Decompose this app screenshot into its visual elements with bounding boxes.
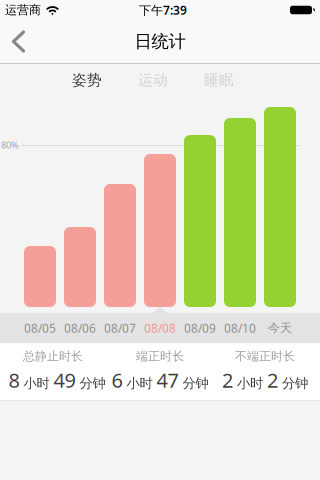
staticText: 小时 xyxy=(237,375,263,391)
staticText: 47 xyxy=(156,367,178,393)
staticText: 运营商 xyxy=(5,3,41,17)
button[interactable]: 今天 xyxy=(260,313,300,343)
staticText: 08/09 xyxy=(184,320,216,336)
staticText: 分钟 xyxy=(182,375,208,391)
button[interactable]: 08/09 xyxy=(180,313,220,343)
staticText: 2 xyxy=(267,367,278,393)
staticText: 小时 xyxy=(23,375,49,391)
button[interactable]: 睡眠 xyxy=(187,64,251,96)
button[interactable]: 08/10 xyxy=(220,313,260,343)
staticText: 小时 xyxy=(126,375,152,391)
button[interactable]: 运动 xyxy=(121,64,185,96)
staticText: 姿势 xyxy=(72,71,102,89)
staticText: 2 xyxy=(222,367,233,393)
staticText: 49 xyxy=(53,367,75,393)
staticText: 端正时长 xyxy=(136,349,184,364)
staticText: 6 xyxy=(111,367,122,393)
staticText: 下午7:39 xyxy=(139,2,187,18)
staticText: 日统计 xyxy=(134,31,185,52)
staticText: 08/07 xyxy=(104,320,136,336)
staticText: 分钟 xyxy=(282,375,308,391)
button[interactable]: 08/08 xyxy=(140,313,180,343)
staticText: 今天 xyxy=(268,321,292,335)
staticText: 80% xyxy=(1,139,19,151)
staticText: 08/10 xyxy=(224,320,256,336)
staticText: 总静止时长 xyxy=(23,349,83,364)
staticText: 08/06 xyxy=(64,320,96,336)
button[interactable]: 姿势 xyxy=(55,64,119,96)
staticText: 08/05 xyxy=(24,320,56,336)
button[interactable]: 08/06 xyxy=(60,313,100,343)
staticText: 08/08 xyxy=(144,320,176,336)
button[interactable]: 08/07 xyxy=(100,313,140,343)
button[interactable]: Back xyxy=(0,20,30,63)
button[interactable]: 08/05 xyxy=(20,313,60,343)
staticText: 睡眠 xyxy=(204,71,234,89)
staticText: 8 xyxy=(8,367,19,393)
staticText: 运动 xyxy=(138,71,168,89)
staticText: 不端正时长 xyxy=(235,349,295,364)
staticText: 分钟 xyxy=(79,375,105,391)
